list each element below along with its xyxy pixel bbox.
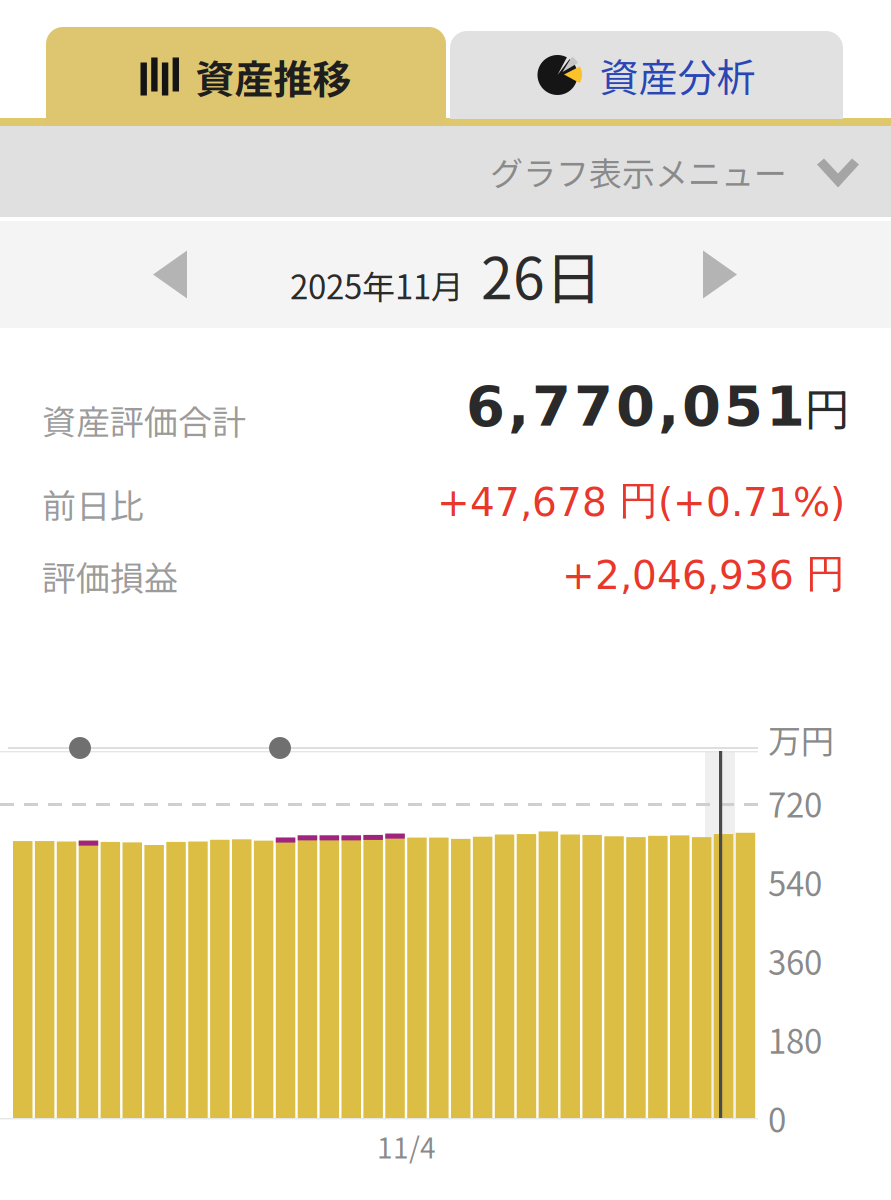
staticText: 評価損益 bbox=[42, 551, 178, 601]
staticText: 180 bbox=[768, 1015, 822, 1063]
staticText: 万円 bbox=[768, 715, 834, 763]
button[interactable]: 資産分析 bbox=[450, 31, 843, 119]
staticText: 540 bbox=[768, 858, 822, 906]
staticText: 資産評価合計 bbox=[42, 395, 246, 445]
staticText: 26日 bbox=[481, 233, 602, 316]
button[interactable]: グラフ表示メニュー bbox=[0, 126, 891, 217]
staticText: 720 bbox=[768, 779, 822, 827]
button[interactable]: 資産推移 bbox=[46, 27, 446, 126]
staticText: 2025年11月 bbox=[290, 261, 464, 309]
staticText: 0 bbox=[768, 1094, 786, 1142]
staticText: 11/4 bbox=[377, 1126, 436, 1166]
staticText: 資産推移 bbox=[195, 48, 351, 105]
staticText: グラフ表示メニュー bbox=[490, 148, 787, 195]
button[interactable]: 翌日 bbox=[672, 221, 768, 328]
button[interactable]: 前日 bbox=[122, 221, 218, 328]
staticText: 前日比 bbox=[42, 479, 144, 529]
staticText: +2,046,936 円 bbox=[562, 549, 845, 598]
staticText: 資産分析 bbox=[599, 47, 755, 103]
staticText: +47,678 円(+0.71%) bbox=[437, 476, 845, 525]
staticText: 円 bbox=[805, 374, 849, 438]
staticText: 6,770,051 bbox=[466, 373, 805, 439]
staticText: 360 bbox=[768, 937, 822, 984]
